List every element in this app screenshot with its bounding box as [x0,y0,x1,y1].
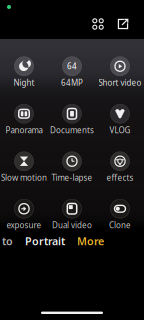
staticText: Short video [98,77,141,88]
button[interactable]: Time-lapse [48,142,96,190]
button[interactable]: Documents [48,95,96,142]
staticText: Dual video [52,220,92,230]
staticText: 64 [67,61,77,71]
staticText: Portrait [25,234,65,248]
button[interactable]: Dual video [48,190,96,237]
button[interactable]: Panorama [0,95,48,142]
staticText: 64MP [61,77,83,88]
button[interactable]: 64 [48,47,96,95]
button[interactable]: Clone [96,190,144,237]
button[interactable]: exposure [0,190,48,237]
button[interactable]: Portrait [25,232,65,250]
staticText: Clone [109,220,131,230]
button[interactable]: Short video [96,47,144,95]
staticText: VLOG [109,125,130,135]
staticText: Time-lapse [51,172,92,183]
button[interactable]: More [77,232,104,250]
staticText: Slow motion [1,172,47,183]
button[interactable]: Night [0,47,48,95]
staticText: Night [13,77,34,88]
staticText: effects [106,172,133,183]
staticText: More [77,234,104,248]
staticText: Panorama [5,125,42,135]
button[interactable]: Slow motion [0,142,48,190]
staticText: exposure [6,220,41,230]
staticText: Documents [50,125,94,135]
button[interactable]: effects [96,142,144,190]
button[interactable]: VLOG [96,95,144,142]
button[interactable]: to [2,232,13,250]
staticText: to [2,234,13,248]
button[interactable]: Edit modes [114,15,132,33]
button[interactable]: Mode grid [89,15,107,33]
